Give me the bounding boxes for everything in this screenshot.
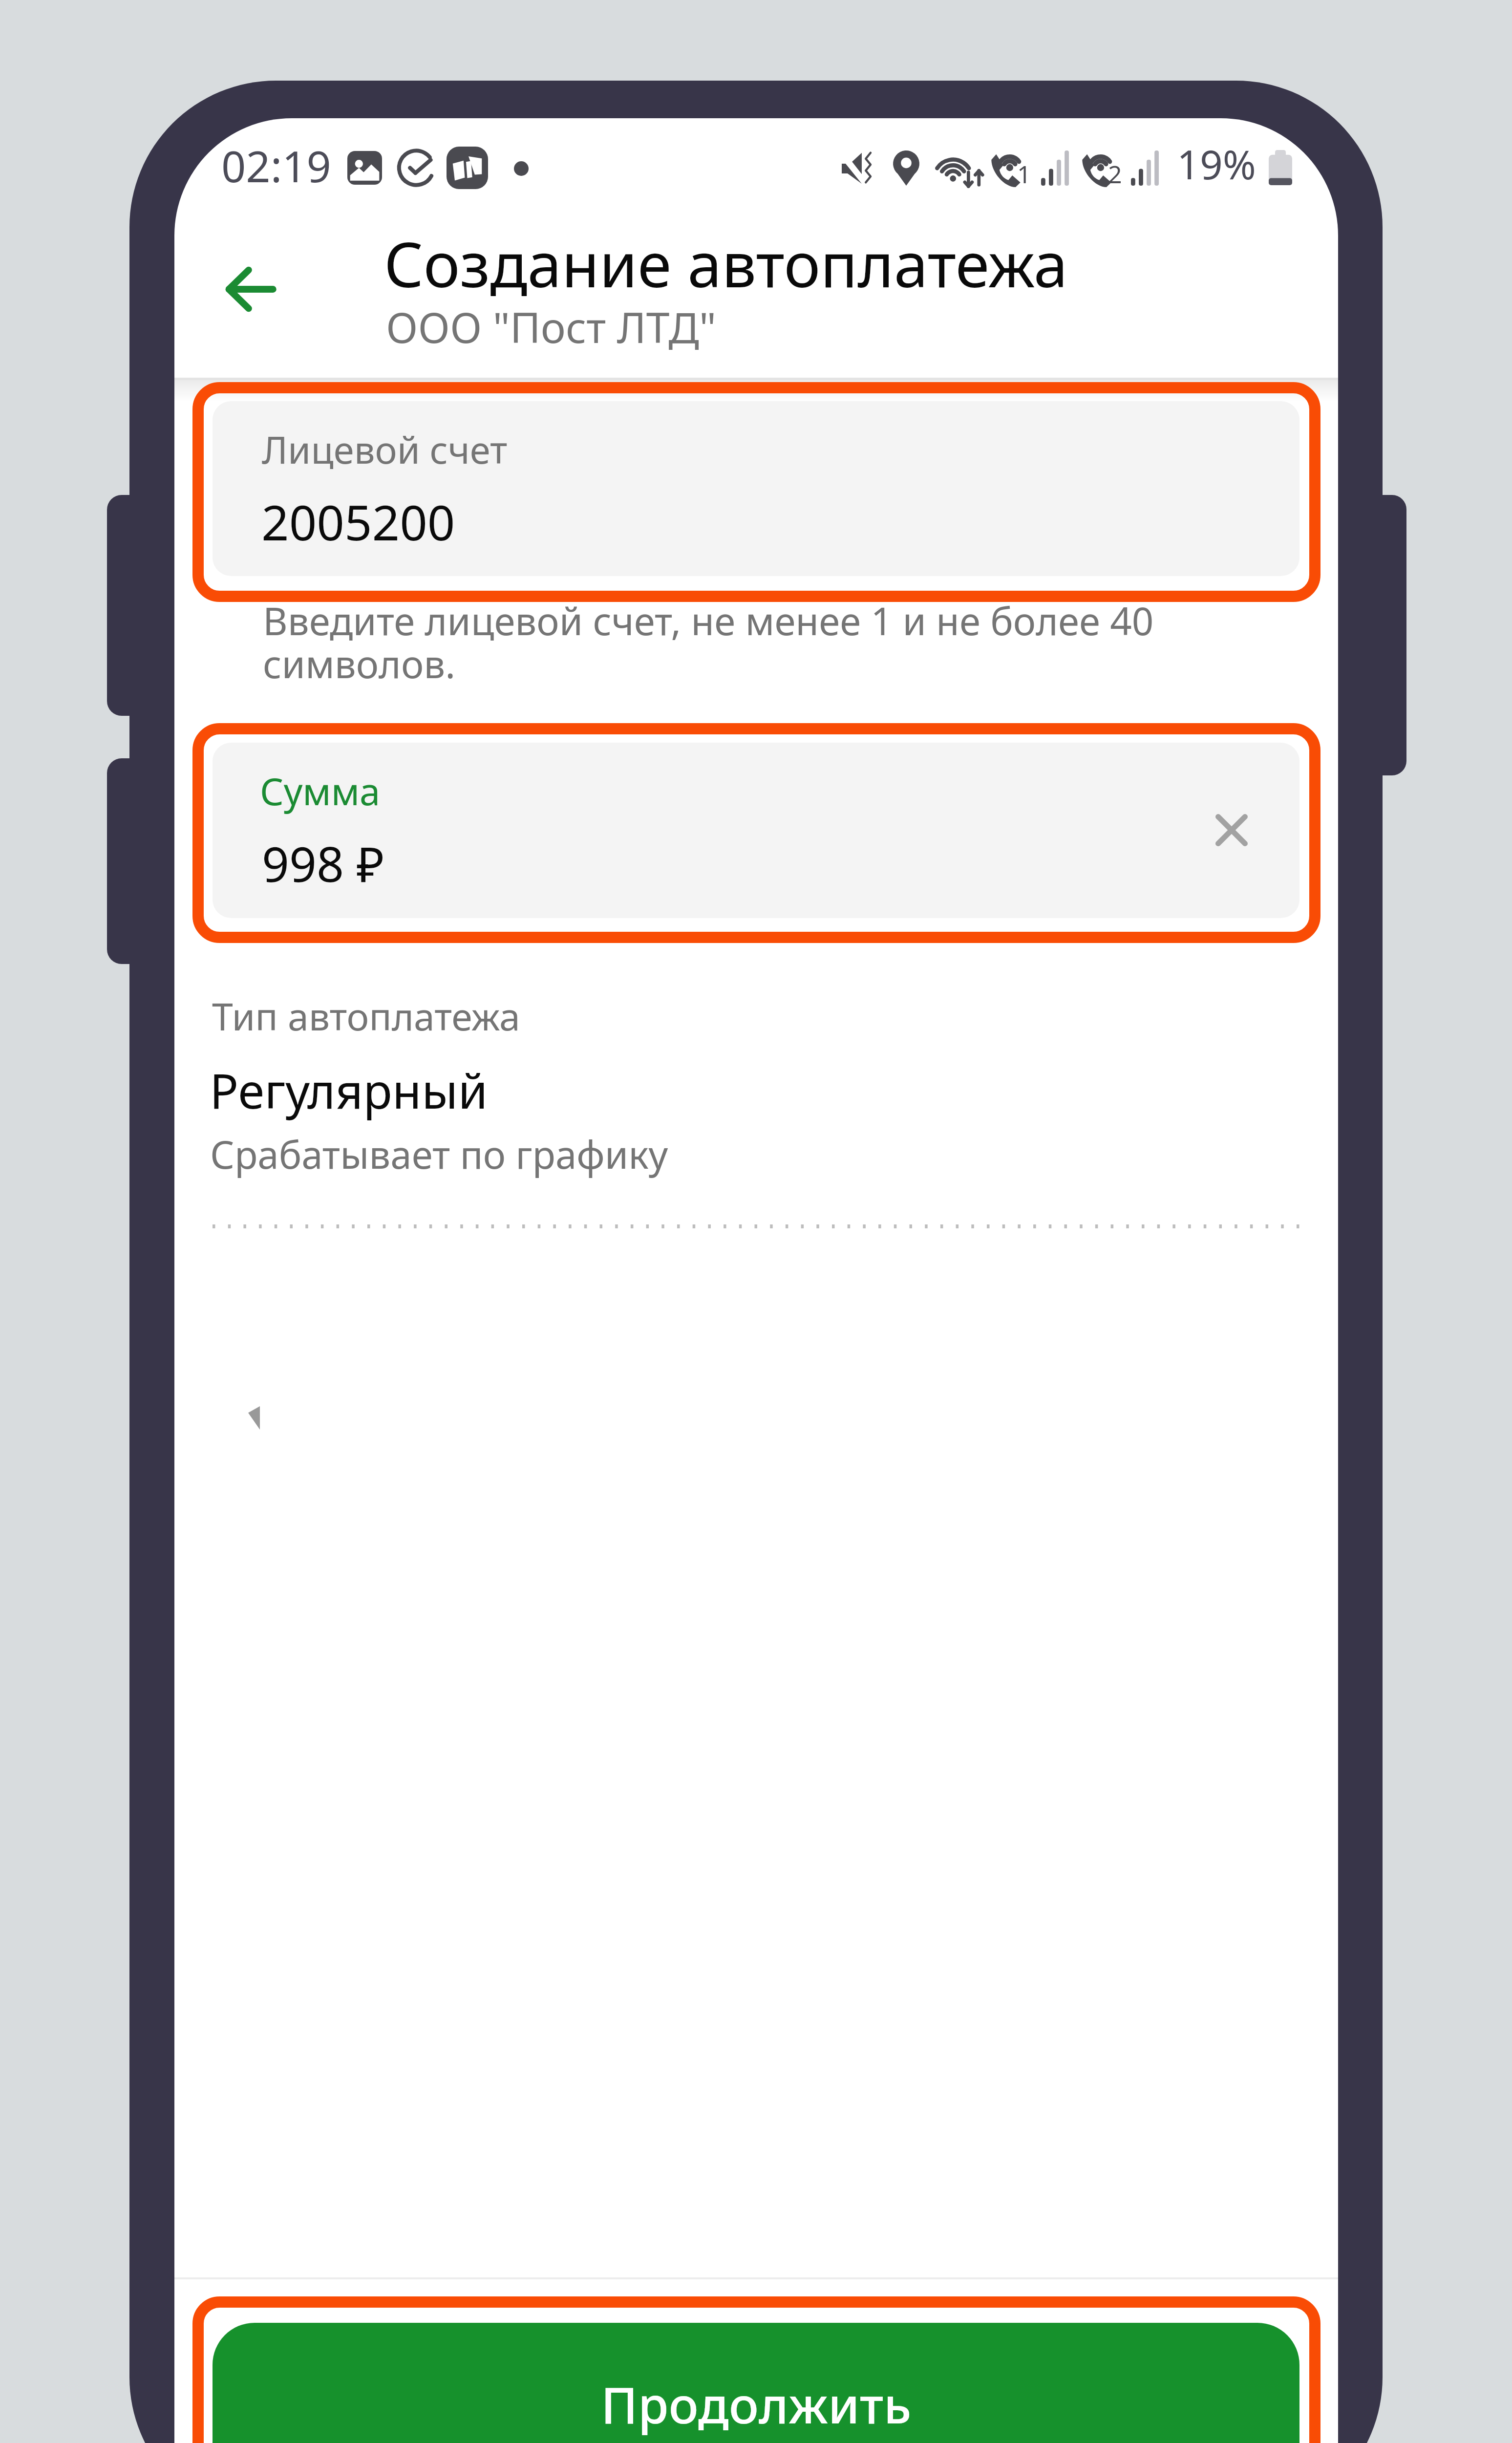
staticText: 2005200 <box>261 489 455 555</box>
staticText: 02:19 <box>221 136 331 195</box>
button[interactable]: Назад <box>195 239 305 339</box>
staticText: Срабатывает по графику <box>210 1128 668 1180</box>
staticText: 19% <box>1177 136 1256 191</box>
staticText: Введите лицевой счет, не менее 1 и не бо… <box>263 595 1181 689</box>
staticText: 2 <box>1108 157 1122 191</box>
staticText: Регулярный <box>210 1057 488 1122</box>
button[interactable]: Очистить <box>1195 793 1268 867</box>
button[interactable] <box>213 401 1299 576</box>
staticText: ООО "Пост ЛТД" <box>386 298 717 355</box>
staticText: Продолжить <box>601 2370 912 2438</box>
staticText: Лицевой счет <box>262 424 508 475</box>
button[interactable] <box>213 743 1299 918</box>
staticText: Сумма <box>260 766 381 816</box>
staticText: 1 <box>1017 157 1031 191</box>
staticText: Тип автоплатежа <box>212 990 520 1042</box>
button[interactable]: Продолжить <box>213 2323 1299 2443</box>
staticText: 998 ₽ <box>262 831 384 896</box>
staticText: Создание автоплатежа <box>384 221 1068 305</box>
